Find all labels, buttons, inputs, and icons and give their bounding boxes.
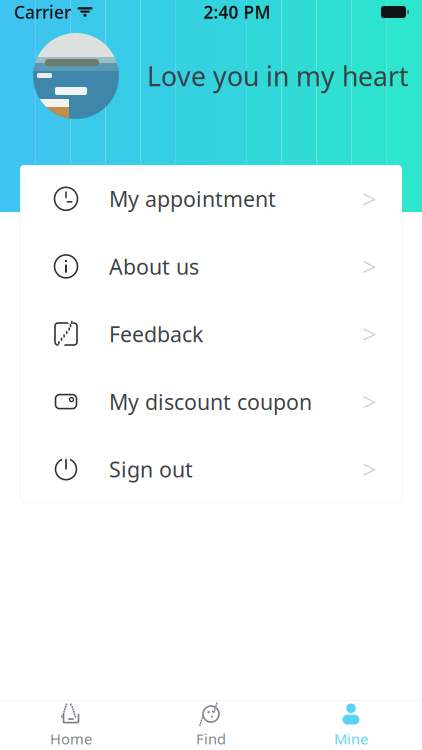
button[interactable]: Home <box>1 701 141 750</box>
button[interactable]: Feedback <box>20 300 402 368</box>
staticText: Carrier <box>14 0 71 23</box>
button[interactable]: Sign out <box>20 435 402 503</box>
staticText: My appointment <box>109 185 276 213</box>
staticText: > <box>362 317 376 351</box>
staticText: My discount coupon <box>109 387 312 416</box>
staticText: Feedback <box>109 320 203 348</box>
staticText: 2:40 PM <box>203 0 270 23</box>
button[interactable]: Mine <box>281 701 421 750</box>
staticText: Mine <box>334 729 368 749</box>
button[interactable]: Find <box>141 701 281 750</box>
staticText: > <box>362 250 376 283</box>
staticText: Sign out <box>109 455 193 483</box>
staticText: > <box>362 452 376 486</box>
staticText: Love you in my heart <box>147 58 409 94</box>
staticText: > <box>362 182 376 216</box>
staticText: Home <box>50 729 92 749</box>
staticText: Find <box>196 729 226 749</box>
button[interactable]: My discount coupon <box>20 368 402 435</box>
button[interactable]: My appointment <box>20 165 402 233</box>
staticText: About us <box>109 252 199 280</box>
button[interactable]: About us <box>20 233 402 300</box>
staticText: > <box>362 385 376 418</box>
